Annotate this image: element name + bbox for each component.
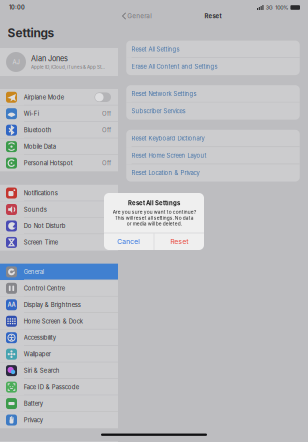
button[interactable]: Face ID & Passcode <box>0 379 118 395</box>
staticText: Wi-Fi <box>24 110 39 117</box>
staticText: Accessibility <box>24 334 56 341</box>
staticText: Off <box>102 110 111 117</box>
button[interactable]: Notifications <box>0 185 118 201</box>
button[interactable]: Subscriber Services <box>126 102 300 120</box>
staticText: 100% <box>275 4 288 11</box>
staticText: Subscriber Services <box>132 107 186 115</box>
button[interactable]: Reset Network Settings <box>126 85 300 102</box>
staticText: Notifications <box>24 189 58 197</box>
button[interactable]: Sounds <box>0 201 118 218</box>
staticText: Are you sure you want to continue? This … <box>112 209 195 227</box>
staticText: 10:00 <box>9 4 25 11</box>
staticText: Off <box>102 127 111 134</box>
button[interactable]: General <box>118 9 152 23</box>
staticText: Privacy <box>24 416 43 424</box>
button[interactable]: Reset Location & Privacy <box>126 164 300 181</box>
button[interactable]: Bluetooth <box>0 122 118 138</box>
staticText: AJ <box>12 58 19 66</box>
staticText: General <box>24 268 44 275</box>
staticText: Reset Network Settings <box>132 90 197 97</box>
staticText: AA <box>7 301 15 308</box>
button[interactable]: AJ <box>0 48 118 76</box>
button[interactable]: Reset All Settings <box>126 41 300 58</box>
staticText: Personal Hotspot <box>24 159 73 167</box>
button[interactable]: Battery <box>0 395 118 412</box>
staticText: Face ID & Passcode <box>24 383 79 391</box>
staticText: Off <box>102 159 111 167</box>
button[interactable]: Personal Hotspot <box>0 155 118 171</box>
button[interactable]: Accessibility <box>0 329 118 346</box>
staticText: Mobile Data <box>24 143 56 150</box>
button[interactable]: Control Centre <box>0 280 118 297</box>
button[interactable]: Reset Home Screen Layout <box>126 147 300 164</box>
staticText: Reset Location & Privacy <box>132 169 200 176</box>
staticText: Settings <box>7 26 54 40</box>
button[interactable]: Do Not Disturb <box>0 218 118 234</box>
button[interactable]: Siri & Search <box>0 362 118 379</box>
staticText: Reset Home Screen Layout <box>132 152 207 159</box>
staticText: Sounds <box>24 206 47 213</box>
staticText: Battery <box>24 400 43 407</box>
staticText: Screen Time <box>24 239 58 246</box>
staticText: Display & Brightness <box>24 301 81 308</box>
staticText: Erase All Content and Settings <box>132 63 218 70</box>
staticText: Alan Jones <box>31 54 68 63</box>
staticText: 3G <box>266 4 273 11</box>
staticText: Do Not Disturb <box>24 222 66 230</box>
button[interactable]: Reset <box>154 233 204 250</box>
staticText: Airplane Mode <box>24 94 64 101</box>
button[interactable]: Wallpaper <box>0 346 118 362</box>
staticText: General <box>127 12 152 20</box>
staticText: Cancel <box>117 237 140 246</box>
staticText: Home Screen & Dock <box>24 318 83 325</box>
button[interactable]: Reset Keyboard Dictionary <box>126 130 300 147</box>
staticText: Reset <box>204 12 221 20</box>
staticText: Control Centre <box>24 285 65 292</box>
button[interactable]: Wi-Fi <box>0 105 118 122</box>
staticText: Siri & Search <box>24 367 60 374</box>
button[interactable]: Cancel <box>104 233 154 250</box>
button[interactable]: Screen Time <box>0 234 118 251</box>
button[interactable]: Erase All Content and Settings <box>126 58 300 75</box>
staticText: Reset All Settings <box>128 199 180 207</box>
staticText: Wallpaper <box>24 351 51 358</box>
button[interactable]: Airplane Mode <box>0 89 118 105</box>
button[interactable]: Mobile Data <box>0 138 118 155</box>
button[interactable]: AA <box>0 297 118 313</box>
button[interactable]: General <box>0 264 118 280</box>
staticText: Reset Keyboard Dictionary <box>132 135 205 142</box>
staticText: Bluetooth <box>24 127 52 134</box>
staticText: Apple ID, iCloud, iTunes & App St… <box>31 64 105 70</box>
staticText: Reset All Settings <box>132 46 180 53</box>
button[interactable]: Privacy <box>0 412 118 428</box>
button[interactable]: Home Screen & Dock <box>0 313 118 329</box>
staticText: Reset <box>170 237 188 246</box>
